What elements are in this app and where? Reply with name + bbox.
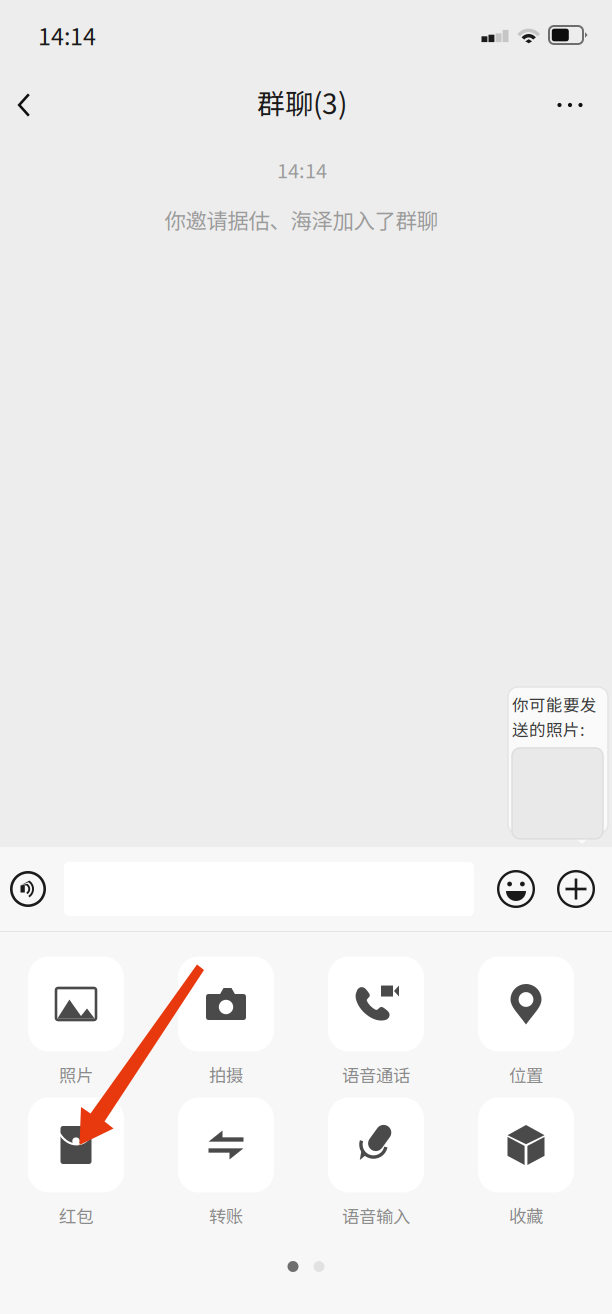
button[interactable]: Voice input	[9, 870, 47, 908]
staticText: 群聊(3)	[257, 82, 347, 122]
button[interactable]: 收藏	[451, 1094, 601, 1230]
button[interactable]: 红包	[1, 1094, 151, 1230]
staticText: 你邀请据估、海泽加入了群聊	[164, 204, 437, 235]
button[interactable]: 转账	[151, 1094, 301, 1230]
staticText: 转账	[209, 1203, 243, 1228]
button[interactable]: Emoji	[496, 869, 536, 909]
staticText: 语音通话	[342, 1062, 410, 1087]
button[interactable]: Back	[1, 70, 47, 140]
button[interactable]: 语音通话	[301, 953, 451, 1089]
button[interactable]: More	[547, 70, 593, 140]
staticText: 14:14	[277, 155, 327, 184]
staticText: 位置	[509, 1062, 543, 1087]
staticText: 送的照片:	[512, 717, 585, 741]
button[interactable]: 照片	[1, 953, 151, 1089]
button[interactable]: 拍摄	[151, 953, 301, 1089]
button[interactable]: 位置	[451, 953, 601, 1089]
staticText: 14:14	[38, 18, 96, 52]
staticText: 你可能要发	[512, 692, 597, 716]
staticText: 语音输入	[342, 1203, 410, 1228]
staticText: 照片	[59, 1062, 93, 1087]
button[interactable]: 语音输入	[301, 1094, 451, 1230]
button[interactable]: More actions	[556, 869, 596, 909]
staticText: 红包	[59, 1203, 93, 1228]
staticText: 拍摄	[209, 1062, 243, 1087]
staticText: 收藏	[509, 1203, 543, 1228]
